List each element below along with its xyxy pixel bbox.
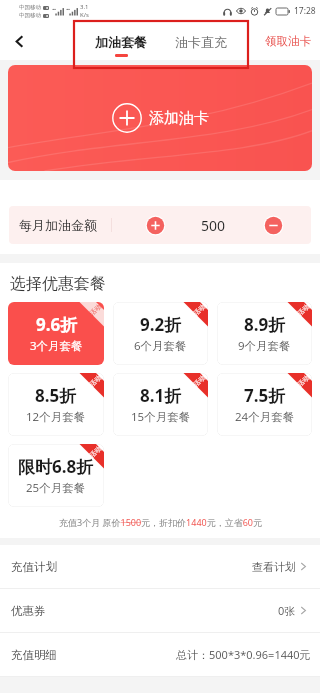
- staticText: 活动: [88, 374, 103, 388]
- button[interactable]: 油卡直充: [170, 33, 232, 55]
- button[interactable]: Increase amount: [145, 215, 166, 236]
- staticText: 17:28: [294, 5, 316, 17]
- staticText: 6个月套餐: [134, 338, 187, 354]
- button[interactable]: 限时6.8折: [8, 444, 104, 507]
- staticText: K/s: [80, 11, 89, 19]
- staticText: 充值计划: [11, 560, 57, 574]
- staticText: 每月加油金额: [19, 217, 97, 233]
- button[interactable]: 9.6折: [8, 302, 104, 365]
- button[interactable]: 充值计划: [0, 545, 320, 588]
- button[interactable]: 8.5折: [8, 373, 104, 436]
- button[interactable]: 添加油卡: [8, 65, 312, 171]
- button[interactable]: 优惠券: [0, 589, 320, 632]
- staticText: 8.1折: [140, 384, 182, 407]
- button[interactable]: 7.5折: [217, 373, 312, 436]
- staticText: 限时6.8折: [18, 455, 94, 478]
- staticText: 12个月套餐: [26, 409, 86, 425]
- staticText: 3.1: [80, 3, 89, 11]
- button[interactable]: 8.9折: [217, 302, 312, 365]
- staticText: 活动: [192, 374, 207, 388]
- staticText: 24个月套餐: [235, 409, 295, 425]
- staticText: 9.6折: [36, 313, 78, 336]
- staticText: 活动: [88, 303, 103, 317]
- staticText: 9.2折: [140, 313, 182, 336]
- button[interactable]: 9.2折: [113, 302, 208, 365]
- staticText: 7.5折: [244, 384, 286, 407]
- staticText: 查看计划: [252, 560, 296, 574]
- staticText: 15个月套餐: [131, 409, 191, 425]
- button[interactable]: 8.1折: [113, 373, 208, 436]
- staticText: 8.5折: [35, 384, 77, 407]
- staticText: 加油套餐: [95, 34, 147, 50]
- staticText: 选择优惠套餐: [10, 274, 106, 294]
- button[interactable]: 充值明细: [0, 633, 320, 676]
- staticText: 9个月套餐: [238, 338, 291, 354]
- button[interactable]: 领取油卡: [265, 34, 320, 48]
- button[interactable]: 加油套餐: [90, 33, 152, 62]
- staticText: 活动: [296, 374, 311, 388]
- staticText: 中国移动: [19, 4, 41, 11]
- staticText: 0张: [278, 603, 296, 618]
- staticText: 充值明细: [11, 648, 57, 662]
- staticText: 油卡直充: [175, 34, 227, 50]
- button[interactable]: Back: [0, 22, 38, 60]
- staticText: 25个月套餐: [26, 480, 86, 496]
- staticText: 领取油卡: [265, 34, 311, 48]
- staticText: 添加油卡: [149, 109, 209, 128]
- staticText: 活动: [296, 303, 311, 317]
- staticText: 总计：500*3*0.96=1440元: [176, 647, 311, 662]
- staticText: 活动: [192, 303, 207, 317]
- staticText: 优惠券: [11, 604, 46, 618]
- button[interactable]: Decrease amount: [263, 215, 284, 236]
- staticText: 充值3个月 原价1500元，折扣价1440元，立省60元: [59, 516, 262, 528]
- staticText: 8.9折: [244, 313, 286, 336]
- staticText: 3个月套餐: [30, 338, 83, 354]
- staticText: 500: [201, 216, 226, 235]
- staticText: 活动: [88, 445, 103, 459]
- staticText: 中国移动: [19, 12, 41, 19]
